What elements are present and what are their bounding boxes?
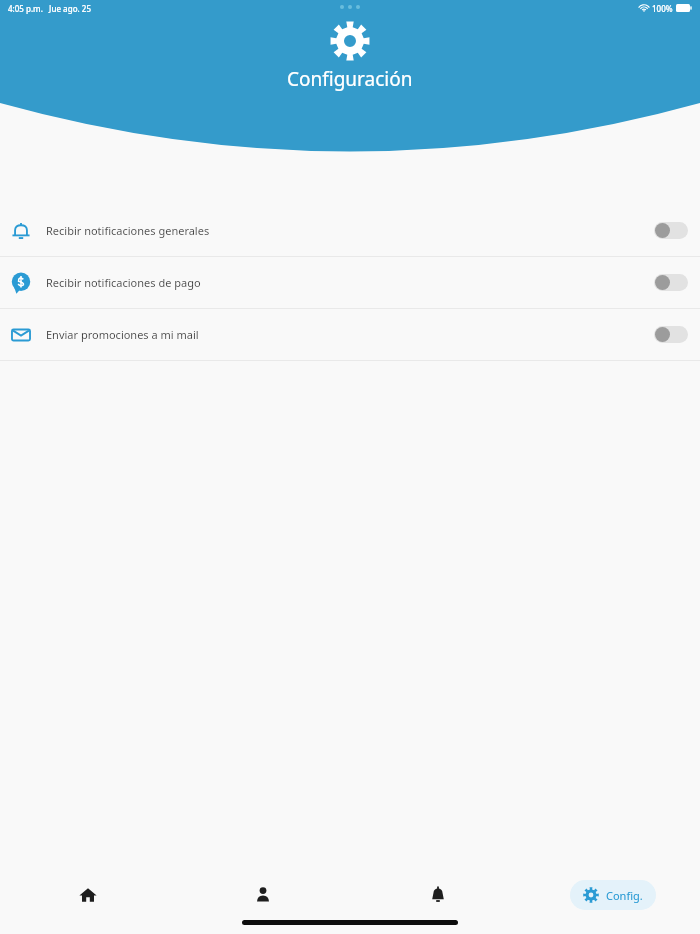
staticText: Recibir notificaciones generales — [46, 223, 210, 238]
staticText: Recibir notificaciones de pago — [46, 275, 201, 290]
button[interactable]: Config. — [570, 880, 656, 910]
button[interactable]: Notificaciones — [350, 870, 525, 920]
button[interactable]: Perfil — [175, 870, 350, 920]
button[interactable]: Activar Recibir notificaciones generales — [654, 222, 688, 239]
staticText: Configuración — [287, 66, 413, 92]
button[interactable]: Enviar promociones a mi mail — [0, 309, 700, 360]
staticText: 4:05 p.m. Jue ago. 25 — [8, 3, 91, 14]
button[interactable]: Recibir notificaciones generales — [0, 205, 700, 256]
button[interactable]: Recibir notificaciones de pago — [0, 257, 700, 308]
staticText: 100% — [652, 3, 673, 14]
staticText: Config. — [606, 888, 643, 903]
staticText: Enviar promociones a mi mail — [46, 327, 199, 342]
button[interactable]: Activar Enviar promociones a mi mail — [654, 326, 688, 343]
button[interactable]: Inicio — [0, 870, 175, 920]
button[interactable]: Activar Recibir notificaciones de pago — [654, 274, 688, 291]
